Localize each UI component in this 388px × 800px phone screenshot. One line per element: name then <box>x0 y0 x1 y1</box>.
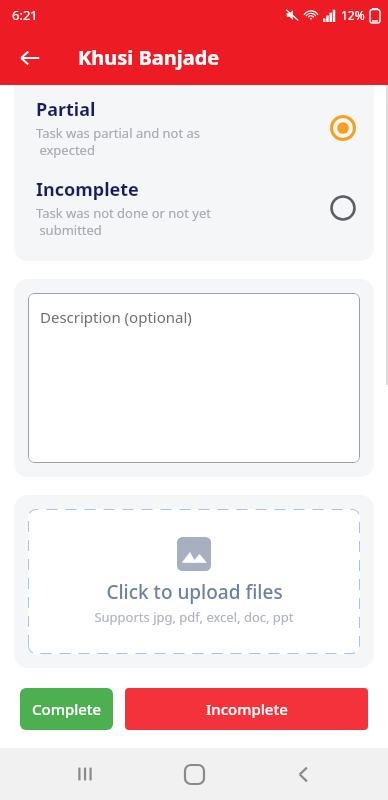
button[interactable]: Back <box>279 750 327 798</box>
button[interactable]: Incomplete <box>125 688 368 730</box>
staticText: Partial <box>36 97 96 122</box>
staticText: Task was not done or not yet submitted <box>36 204 211 239</box>
button[interactable]: Back <box>8 36 52 80</box>
button[interactable]: Complete <box>20 688 113 730</box>
staticText: Complete <box>32 699 102 719</box>
button[interactable]: Click to upload files <box>28 509 360 654</box>
staticText: Task was partial and not as expected <box>36 124 201 159</box>
staticText: Khusi Banjade <box>78 44 220 71</box>
staticText: Incomplete <box>36 177 139 202</box>
staticText: Incomplete <box>206 699 288 719</box>
staticText: Description (optional) <box>40 307 192 327</box>
staticText: 6:21 <box>12 6 38 24</box>
button[interactable]: Description (optional) <box>28 293 360 463</box>
staticText: 12% <box>341 7 365 23</box>
button[interactable]: Home <box>170 750 218 798</box>
staticText: Click to upload files <box>106 579 283 605</box>
staticText: Supports jpg, pdf, excel, doc, ppt <box>94 608 294 626</box>
button[interactable]: Partial <box>14 85 374 165</box>
button[interactable]: Recent apps <box>61 750 109 798</box>
button[interactable]: Incomplete <box>14 165 374 245</box>
